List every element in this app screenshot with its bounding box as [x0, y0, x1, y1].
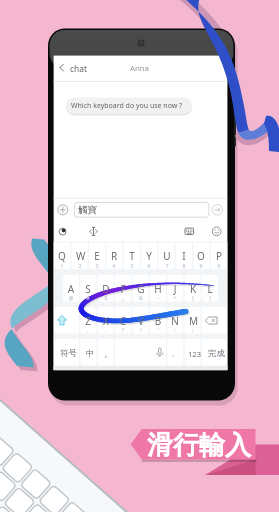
staticText: Q [58, 249, 66, 263]
staticText: X [102, 314, 110, 328]
staticText: U [163, 249, 171, 263]
staticText: P [215, 249, 223, 263]
staticText: Z [84, 314, 92, 328]
staticText: @ [68, 294, 74, 301]
staticText: 3 [94, 262, 100, 269]
staticText: V [137, 314, 145, 328]
staticText: 2 [77, 262, 83, 269]
staticText: - [155, 294, 161, 301]
staticText: O [197, 249, 205, 263]
staticText: ? [120, 326, 126, 333]
staticText: 。 [172, 350, 178, 358]
staticText: C [119, 314, 127, 328]
staticText: ' [155, 326, 161, 333]
staticText: 7 [164, 262, 170, 269]
staticText: N [171, 314, 179, 328]
staticText: + [172, 294, 178, 301]
staticText: 9 [198, 262, 204, 269]
staticText: L [206, 282, 214, 296]
staticText: 4 [111, 262, 117, 269]
staticText: T [128, 249, 136, 263]
staticText: A [67, 282, 75, 296]
staticText: 觸寶 [78, 204, 97, 216]
staticText: $ [103, 294, 109, 301]
staticText: # [85, 294, 91, 301]
staticText: ; [190, 326, 196, 333]
staticText: ! [138, 326, 144, 333]
staticText: J [171, 282, 179, 296]
button[interactable]: 完成 [208, 348, 225, 359]
button[interactable]: 滑行輸入 [147, 429, 251, 462]
staticText: : [172, 326, 178, 333]
staticText: E [93, 249, 101, 263]
staticText: I [180, 249, 188, 263]
button[interactable]: 123 [188, 349, 202, 359]
button[interactable]: 中 [86, 348, 95, 359]
staticText: , [85, 326, 91, 333]
staticText: ) [207, 294, 213, 301]
staticText: 8 [181, 262, 187, 269]
staticText: F [119, 282, 127, 296]
staticText: B [154, 314, 162, 328]
button[interactable]: 符号 [60, 348, 77, 359]
staticText: W [76, 249, 84, 263]
staticText: G [137, 282, 145, 296]
staticText: _ [120, 294, 126, 301]
staticText: 1 [59, 262, 65, 269]
staticText: 0 [216, 262, 222, 269]
staticText: , [105, 348, 108, 359]
staticText: M [189, 314, 197, 328]
staticText: S [84, 282, 92, 296]
staticText: R [110, 249, 118, 263]
staticText: 5 [129, 262, 135, 269]
staticText: Y [145, 249, 153, 263]
staticText: ( [190, 294, 196, 301]
staticText: 6 [146, 262, 152, 269]
button[interactable]: chat [70, 63, 87, 74]
staticText: & [138, 294, 144, 301]
staticText: Which keyboard do you use now ? [71, 101, 183, 111]
staticText: K [189, 282, 197, 296]
staticText: Anna [130, 63, 149, 74]
staticText: . [103, 326, 109, 333]
staticText: D [102, 282, 110, 296]
staticText: H [154, 282, 162, 296]
